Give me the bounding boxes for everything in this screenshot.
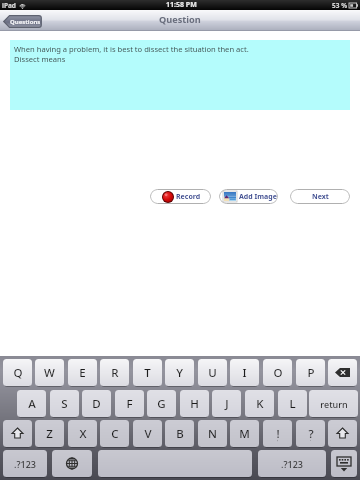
button[interactable]: Shift — [328, 420, 357, 449]
staticText: . — [310, 436, 312, 443]
staticText: L — [289, 396, 296, 412]
button[interactable]: H — [180, 390, 209, 419]
button[interactable]: ! — [263, 420, 292, 449]
button[interactable]: Z — [35, 420, 64, 449]
button[interactable]: Y — [165, 359, 194, 388]
button[interactable]: N — [198, 420, 227, 449]
button[interactable]: Hide keyboard — [331, 450, 357, 479]
button[interactable]: E — [68, 359, 97, 388]
staticText: F — [126, 396, 133, 412]
staticText: N — [208, 426, 217, 442]
button[interactable]: I — [230, 359, 259, 388]
staticText: K — [256, 396, 264, 412]
button[interactable]: A — [17, 390, 46, 419]
staticText: U — [208, 365, 217, 381]
button[interactable]: S — [50, 390, 79, 419]
staticText: Q — [13, 365, 23, 381]
staticText: O — [273, 365, 283, 381]
button[interactable]: Delete — [328, 359, 357, 388]
staticText: V — [144, 426, 152, 442]
staticText: ! — [276, 426, 280, 442]
staticText: Z — [46, 426, 53, 442]
staticText: iPad — [2, 1, 16, 10]
staticText: Question — [159, 13, 201, 26]
staticText: Dissect means — [14, 54, 66, 64]
staticText: J — [225, 396, 229, 412]
staticText: G — [157, 396, 166, 412]
staticText: P — [307, 365, 315, 381]
staticText: .?123 — [281, 458, 303, 470]
staticText: Add Image — [239, 192, 277, 202]
button[interactable]: D — [82, 390, 111, 419]
button[interactable]: W — [35, 359, 64, 388]
staticText: E — [79, 365, 86, 381]
button[interactable]: return — [309, 390, 358, 419]
button[interactable]: ? — [296, 420, 325, 449]
staticText: S — [61, 396, 68, 412]
button[interactable]: .?123 — [258, 450, 326, 479]
staticText: C — [111, 426, 119, 442]
staticText: When having a problem, it is best to dis… — [14, 44, 249, 54]
staticText: I — [242, 365, 247, 381]
staticText: Next — [312, 192, 329, 202]
button[interactable]: .?123 — [3, 450, 47, 479]
staticText: X — [79, 426, 87, 442]
button[interactable]: Space — [98, 450, 252, 479]
button[interactable]: O — [263, 359, 292, 388]
staticText: B — [176, 426, 184, 442]
staticText: Y — [176, 365, 183, 381]
staticText: return — [320, 398, 348, 410]
staticText: R — [111, 365, 119, 381]
staticText: Questions — [10, 18, 41, 26]
button[interactable]: Add Image — [219, 189, 278, 204]
button[interactable]: M — [230, 420, 259, 449]
button[interactable]: Record — [150, 189, 211, 204]
button[interactable]: Q — [3, 359, 32, 388]
staticText: 11:58 PM — [166, 0, 197, 10]
staticText: 53 % — [332, 1, 347, 10]
button[interactable]: R — [100, 359, 129, 388]
staticText: D — [92, 396, 101, 412]
button[interactable]: T — [133, 359, 162, 388]
button[interactable]: Next — [290, 189, 350, 204]
button[interactable]: X — [68, 420, 97, 449]
staticText: T — [144, 365, 151, 381]
button[interactable]: U — [198, 359, 227, 388]
button[interactable]: Questions — [3, 15, 42, 28]
button[interactable]: Next keyboard — [52, 450, 92, 479]
button[interactable]: P — [296, 359, 325, 388]
staticText: M — [239, 426, 250, 442]
staticText: ? — [308, 426, 314, 442]
staticText: H — [190, 396, 199, 412]
button[interactable]: G — [147, 390, 176, 419]
staticText: Record — [176, 192, 201, 202]
staticText: W — [44, 365, 55, 381]
staticText: A — [28, 396, 36, 412]
button[interactable]: L — [278, 390, 307, 419]
button[interactable]: K — [245, 390, 274, 419]
button[interactable]: J — [212, 390, 241, 419]
staticText: , — [277, 436, 279, 443]
button[interactable]: V — [133, 420, 162, 449]
staticText: .?123 — [14, 458, 36, 470]
button[interactable]: Shift — [3, 420, 32, 449]
button[interactable]: C — [100, 420, 129, 449]
button[interactable]: F — [115, 390, 144, 419]
button[interactable]: B — [165, 420, 194, 449]
